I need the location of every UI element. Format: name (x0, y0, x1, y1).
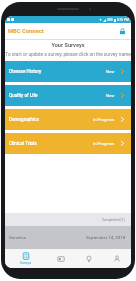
staticText: Quality of Life (9, 93, 38, 98)
button[interactable]: Genetics (5, 226, 131, 249)
staticText: Your Surveys (5, 42, 131, 49)
staticText: Demographics (9, 117, 39, 122)
button[interactable]: Surveys (5, 249, 47, 268)
staticText: Clinical Trials (9, 141, 37, 146)
staticText: 45% (107, 18, 113, 22)
button[interactable]: Clinical Trials (5, 133, 131, 154)
staticText: New (106, 69, 115, 74)
staticText: To start or update a survey, please clic… (5, 52, 131, 58)
button[interactable]: Navigation (47, 249, 75, 268)
button[interactable]: Quality of Life (5, 85, 131, 106)
staticText: September 14, 2018 (86, 235, 126, 240)
staticText: Genetics (9, 235, 27, 240)
staticText: Completed (1) (102, 218, 125, 222)
staticText: In Progress (93, 117, 115, 122)
staticText: Disease History (9, 69, 42, 74)
staticText: MBC Connect (8, 28, 44, 35)
staticText: Surveys (20, 261, 32, 265)
button[interactable]: Lock (117, 26, 128, 37)
button[interactable]: Navigation (75, 249, 103, 268)
staticText: 5:15 PM (117, 18, 129, 22)
button[interactable]: Disease History (5, 61, 131, 82)
staticText: In Progress (93, 141, 115, 146)
staticText: New (106, 93, 115, 98)
button[interactable]: Navigation (103, 249, 131, 268)
button[interactable]: Demographics (5, 109, 131, 130)
